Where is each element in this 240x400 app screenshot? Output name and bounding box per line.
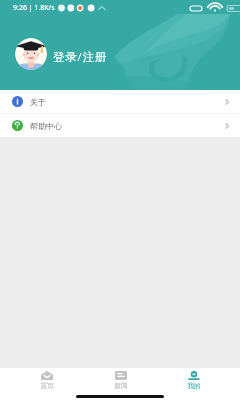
- button[interactable]: News: [84, 368, 157, 390]
- button[interactable]: Mine: [157, 368, 230, 390]
- staticText: 我的: [187, 381, 201, 390]
- button[interactable]: Home: [10, 368, 84, 390]
- button[interactable]: 关于: [0, 90, 240, 113]
- staticText: 9:26 | 1.8K/s: [13, 3, 55, 13]
- staticText: 关于: [30, 97, 46, 107]
- staticText: 帮助中心: [30, 121, 62, 131]
- staticText: 新闻: [114, 381, 128, 390]
- button[interactable]: 帮助中心: [0, 114, 240, 137]
- staticText: 首页: [40, 381, 54, 390]
- button[interactable]: 登录/注册: [15, 38, 240, 70]
- staticText: 登录/注册: [53, 49, 107, 65]
